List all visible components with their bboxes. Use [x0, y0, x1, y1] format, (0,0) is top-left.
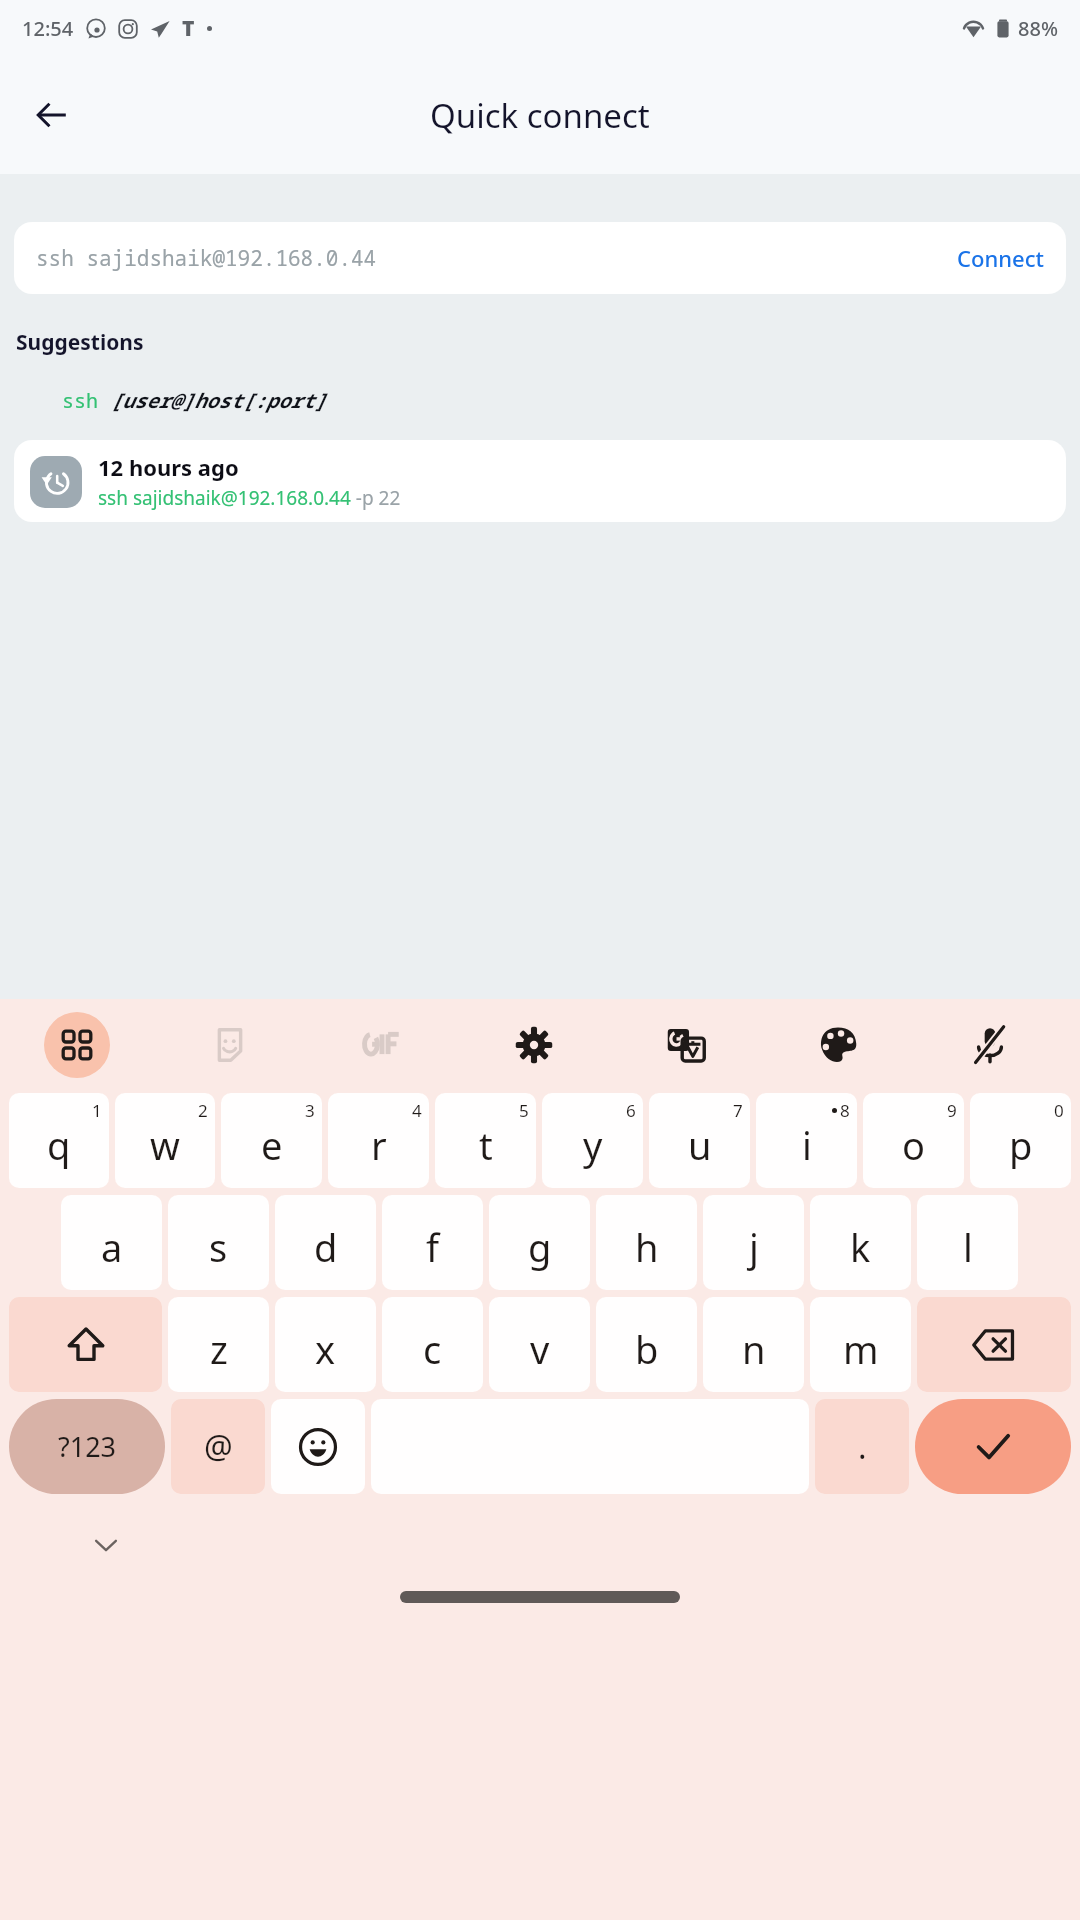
staticText: r — [371, 1119, 387, 1171]
staticText: Connect — [957, 243, 1044, 273]
button[interactable]: Stickers — [154, 1007, 306, 1083]
staticText: h — [635, 1221, 659, 1273]
button[interactable]: l — [917, 1195, 1018, 1290]
staticText: ssh sajidshaik@192.168.0.44 — [36, 244, 377, 273]
staticText: 7 — [733, 1099, 743, 1122]
staticText: i — [802, 1119, 812, 1171]
button[interactable]: h — [596, 1195, 697, 1290]
staticText: k — [850, 1221, 871, 1273]
staticText: l — [963, 1221, 973, 1273]
button[interactable]: q — [9, 1093, 109, 1188]
staticText: 12:54 — [22, 15, 74, 42]
staticText: . — [858, 1425, 867, 1469]
button[interactable]: u — [649, 1093, 750, 1188]
button[interactable]: x — [275, 1297, 376, 1392]
staticText: n — [742, 1323, 766, 1375]
staticText: ssh sajidshaik@192.168.0.44 -p 22 — [98, 485, 401, 511]
button[interactable]: b — [596, 1297, 697, 1392]
button[interactable]: e — [221, 1093, 322, 1188]
staticText: f — [426, 1221, 440, 1273]
button[interactable]: r — [328, 1093, 429, 1188]
staticText: b — [635, 1323, 659, 1375]
staticText: ?123 — [58, 1428, 117, 1465]
button[interactable]: Connect — [949, 237, 1052, 279]
button[interactable]: i — [756, 1093, 857, 1188]
staticText: q — [47, 1119, 71, 1171]
staticText: 2 — [198, 1099, 208, 1122]
staticText: z — [210, 1323, 228, 1375]
staticText: x — [315, 1323, 336, 1375]
staticText: j — [749, 1221, 759, 1273]
staticText: e — [261, 1119, 283, 1171]
staticText: p — [1009, 1119, 1033, 1171]
staticText: d — [314, 1221, 338, 1273]
button[interactable]: Theme — [762, 1007, 914, 1083]
button[interactable]: @ — [171, 1399, 265, 1494]
button[interactable]: t — [435, 1093, 536, 1188]
button[interactable]: n — [703, 1297, 804, 1392]
button[interactable]: v — [489, 1297, 590, 1392]
staticText: @ — [204, 1425, 233, 1469]
staticText: Quick connect — [430, 93, 650, 138]
button[interactable]: y — [542, 1093, 643, 1188]
staticText: s — [209, 1221, 228, 1273]
staticText: 12 hours ago — [98, 452, 239, 482]
staticText: 3 — [305, 1099, 315, 1122]
staticText: o — [902, 1119, 925, 1171]
button[interactable]: w — [115, 1093, 215, 1188]
button[interactable]: d — [275, 1195, 376, 1290]
button[interactable]: GIF — [306, 1007, 458, 1083]
button[interactable]: a — [61, 1195, 162, 1290]
button[interactable]: ?123 — [9, 1399, 165, 1494]
staticText: g — [528, 1221, 552, 1273]
staticText: w — [150, 1119, 180, 1171]
staticText: t — [479, 1119, 493, 1171]
staticText: u — [688, 1119, 712, 1171]
staticText: 0 — [1054, 1099, 1064, 1122]
button[interactable]: j — [703, 1195, 804, 1290]
button[interactable]: s — [168, 1195, 269, 1290]
button[interactable]: Backspace — [917, 1297, 1071, 1392]
button[interactable]: . — [815, 1399, 909, 1494]
staticText: ssh [user@]host[:port] — [62, 387, 326, 414]
staticText: 8 — [840, 1099, 850, 1122]
button[interactable]: c — [382, 1297, 483, 1392]
staticText: 4 — [412, 1099, 422, 1122]
staticText: 1 — [92, 1099, 102, 1122]
button[interactable]: p — [970, 1093, 1071, 1188]
button[interactable]: o — [863, 1093, 964, 1188]
staticText: c — [423, 1323, 442, 1375]
button[interactable]: Back — [24, 87, 80, 143]
button[interactable]: Apps — [44, 1012, 110, 1078]
button[interactable]: Translate — [610, 1007, 762, 1083]
button[interactable]: ssh sajidshaik@192.168.0.44 — [14, 222, 1066, 294]
button[interactable]: g — [489, 1195, 590, 1290]
button[interactable]: f — [382, 1195, 483, 1290]
staticText: 88% — [1018, 15, 1058, 42]
button[interactable]: m — [810, 1297, 911, 1392]
staticText: a — [101, 1221, 123, 1273]
staticText: T — [182, 14, 195, 43]
staticText: 6 — [626, 1099, 636, 1122]
staticText: m — [843, 1323, 879, 1375]
button[interactable]: Emoji — [271, 1399, 365, 1494]
staticText: v — [530, 1323, 550, 1375]
button[interactable]: Enter — [915, 1399, 1071, 1494]
button[interactable]: Voice off — [914, 1007, 1066, 1083]
staticText: 5 — [519, 1099, 529, 1122]
staticText: Suggestions — [16, 328, 144, 357]
staticText: y — [583, 1119, 603, 1171]
staticText: 9 — [947, 1099, 957, 1122]
button[interactable]: Hide keyboard — [84, 1523, 128, 1567]
button[interactable]: Settings — [458, 1007, 610, 1083]
button[interactable]: Shift — [9, 1297, 162, 1392]
button[interactable]: 12 hours ago — [14, 440, 1066, 522]
button[interactable]: k — [810, 1195, 911, 1290]
button[interactable]: z — [168, 1297, 269, 1392]
